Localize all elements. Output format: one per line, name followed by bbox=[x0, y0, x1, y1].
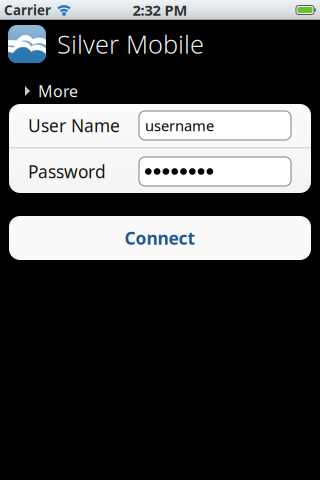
staticText: More bbox=[38, 80, 78, 102]
staticText: Password bbox=[28, 160, 106, 183]
staticText: Connect bbox=[124, 226, 195, 249]
staticText: Carrier bbox=[4, 1, 51, 19]
staticText: User Name bbox=[28, 114, 120, 137]
staticText: username bbox=[145, 116, 214, 135]
staticText: Silver Mobile bbox=[57, 27, 204, 61]
button[interactable]: More bbox=[0, 78, 320, 102]
staticText: 2:32 PM bbox=[132, 0, 187, 20]
button[interactable]: Connect bbox=[9, 216, 311, 260]
